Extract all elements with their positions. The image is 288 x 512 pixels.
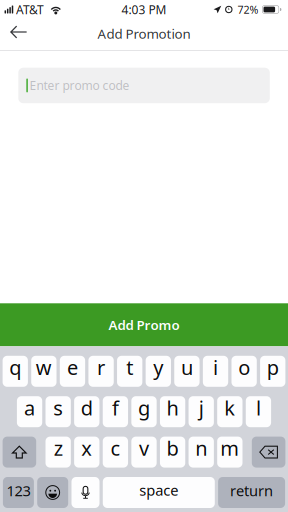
staticText: return [230,481,273,500]
button[interactable]: z [45,437,71,468]
staticText: f [112,394,119,421]
staticText: j [199,394,204,421]
button[interactable]: c [103,437,128,468]
button[interactable]: g [131,396,157,427]
button[interactable]: j [189,396,214,427]
button[interactable]: Shift [3,437,36,468]
button[interactable]: b [160,437,185,468]
staticText: i [213,354,218,381]
staticText: 123 [6,481,30,500]
staticText: a [24,394,35,421]
button[interactable]: e [60,356,85,387]
button[interactable]: Dictation [71,477,99,508]
staticText: o [238,354,250,381]
button[interactable]: 123 [3,477,34,508]
staticText: h [167,394,179,421]
button[interactable]: m [217,437,242,468]
staticText: w [36,354,52,381]
button[interactable]: l [246,396,271,427]
button[interactable]: n [189,437,214,468]
button[interactable]: w [31,356,56,387]
staticText: 72% [237,2,258,17]
button[interactable]: k [217,396,242,427]
staticText: Add Promo [108,316,179,334]
staticText: x [81,435,92,461]
staticText: space [139,480,178,500]
staticText: 4:03 PM [121,1,166,17]
button[interactable]: x [74,437,99,468]
staticText: m [220,435,239,461]
staticText: s [53,394,63,421]
button[interactable]: f [103,396,128,427]
staticText: e [67,354,78,381]
button[interactable]: space [103,477,215,508]
staticText: Enter promo code [29,77,129,93]
staticText: v [139,435,149,461]
staticText: AT&T [16,1,44,17]
button[interactable]: u [174,356,200,387]
button[interactable]: d [74,396,99,427]
staticText: b [167,435,179,461]
button[interactable]: o [231,356,257,387]
button[interactable]: p [260,356,285,387]
staticText: c [110,435,120,461]
staticText: p [267,354,279,381]
button[interactable]: s [45,396,71,427]
button[interactable]: Back [0,19,36,50]
button[interactable]: Add Promo [0,303,288,346]
staticText: r [97,354,105,381]
staticText: y [153,354,163,381]
button[interactable]: r [88,356,114,387]
button[interactable]: t [117,356,142,387]
button[interactable]: a [17,396,42,427]
button[interactable]: q [3,356,28,387]
button[interactable]: Delete [252,437,285,468]
staticText: n [195,435,207,461]
button[interactable]: h [160,396,185,427]
button[interactable]: y [146,356,171,387]
button[interactable]: v [131,437,157,468]
staticText: u [181,354,193,381]
button[interactable]: Emoji [37,477,68,508]
staticText: Add Promotion [97,25,190,42]
staticText: t [126,354,133,381]
staticText: l [256,394,261,421]
staticText: d [81,394,93,421]
button[interactable]: i [203,356,228,387]
button[interactable]: return [218,477,285,508]
staticText: k [224,394,235,421]
staticText: z [54,435,63,461]
staticText: g [138,394,150,421]
staticText: q [9,354,21,381]
